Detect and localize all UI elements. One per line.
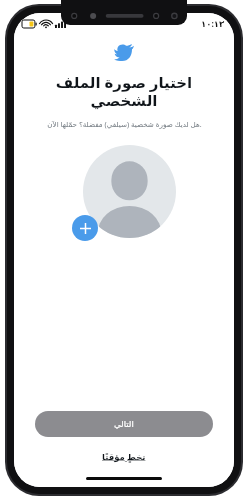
button[interactable]: التالي [35,411,213,437]
staticText: اختيار صورة الملف الشخصي [24,72,224,109]
button[interactable]: تخطٍ مؤقتًا [96,449,152,465]
button[interactable]: Profile photo placeholder [83,145,176,238]
staticText: تخطٍ مؤقتًا [102,451,146,463]
staticText: هل لديك صورة شخصية (سيلفي) مفضلة؟ حمّلها… [47,119,202,129]
button[interactable]: Add profile photo [72,215,98,241]
staticText: ١٠:١٣ [201,18,225,30]
staticText: التالي [114,419,134,429]
